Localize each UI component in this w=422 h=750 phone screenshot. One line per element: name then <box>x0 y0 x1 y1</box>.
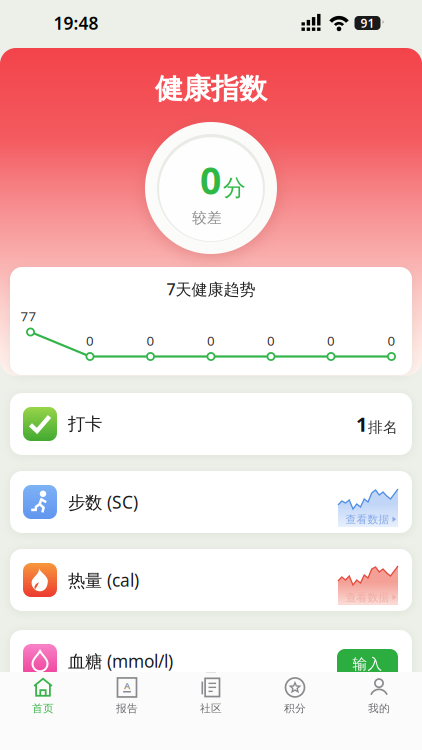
staticText: 输入 <box>352 655 382 673</box>
staticText: 步数 (SC) <box>68 490 138 513</box>
staticText: 首页 <box>32 702 54 715</box>
staticText: 报告 <box>116 702 138 715</box>
staticText: 社区 <box>200 702 222 715</box>
staticText: 我的 <box>368 702 390 715</box>
staticText: 0 <box>146 332 154 349</box>
button[interactable]: A <box>85 677 169 715</box>
staticText: 0 <box>387 332 395 349</box>
staticText: 91 <box>360 15 374 31</box>
staticText: 较差 <box>192 209 222 227</box>
staticText: 分 <box>223 174 246 202</box>
staticText: 打卡 <box>68 413 102 435</box>
staticText: 0 <box>86 332 94 349</box>
button[interactable]: 热量 (cal) <box>10 549 412 611</box>
button[interactable]: 社区 <box>169 677 253 715</box>
button[interactable]: 首页 <box>1 677 85 715</box>
button[interactable]: 血糖 (mmol/l) <box>10 630 412 692</box>
button[interactable]: 积分 <box>253 677 337 715</box>
button[interactable]: 我的 <box>337 677 421 715</box>
staticText: 0 <box>200 155 221 205</box>
staticText: 健康指数 <box>155 72 267 106</box>
button[interactable]: 打卡 <box>10 393 412 455</box>
staticText: 19:48 <box>53 11 98 34</box>
staticText: 1 <box>356 411 367 437</box>
staticText: 77 <box>20 307 36 325</box>
staticText: 0 <box>267 332 275 349</box>
staticText: A <box>124 679 130 692</box>
staticText: 7天健康趋势 <box>166 278 255 300</box>
staticText: 0 <box>327 332 335 349</box>
button[interactable]: 输入 <box>337 649 398 679</box>
staticText: 排名 <box>368 418 398 436</box>
staticText: 查看数据 <box>345 591 389 604</box>
staticText: 0 <box>207 332 215 349</box>
staticText: 查看数据 <box>345 513 389 526</box>
staticText: 热量 (cal) <box>68 568 139 591</box>
staticText: 积分 <box>284 702 306 715</box>
staticText: 血糖 (mmol/l) <box>68 649 173 672</box>
button[interactable]: 步数 (SC) <box>10 471 412 533</box>
